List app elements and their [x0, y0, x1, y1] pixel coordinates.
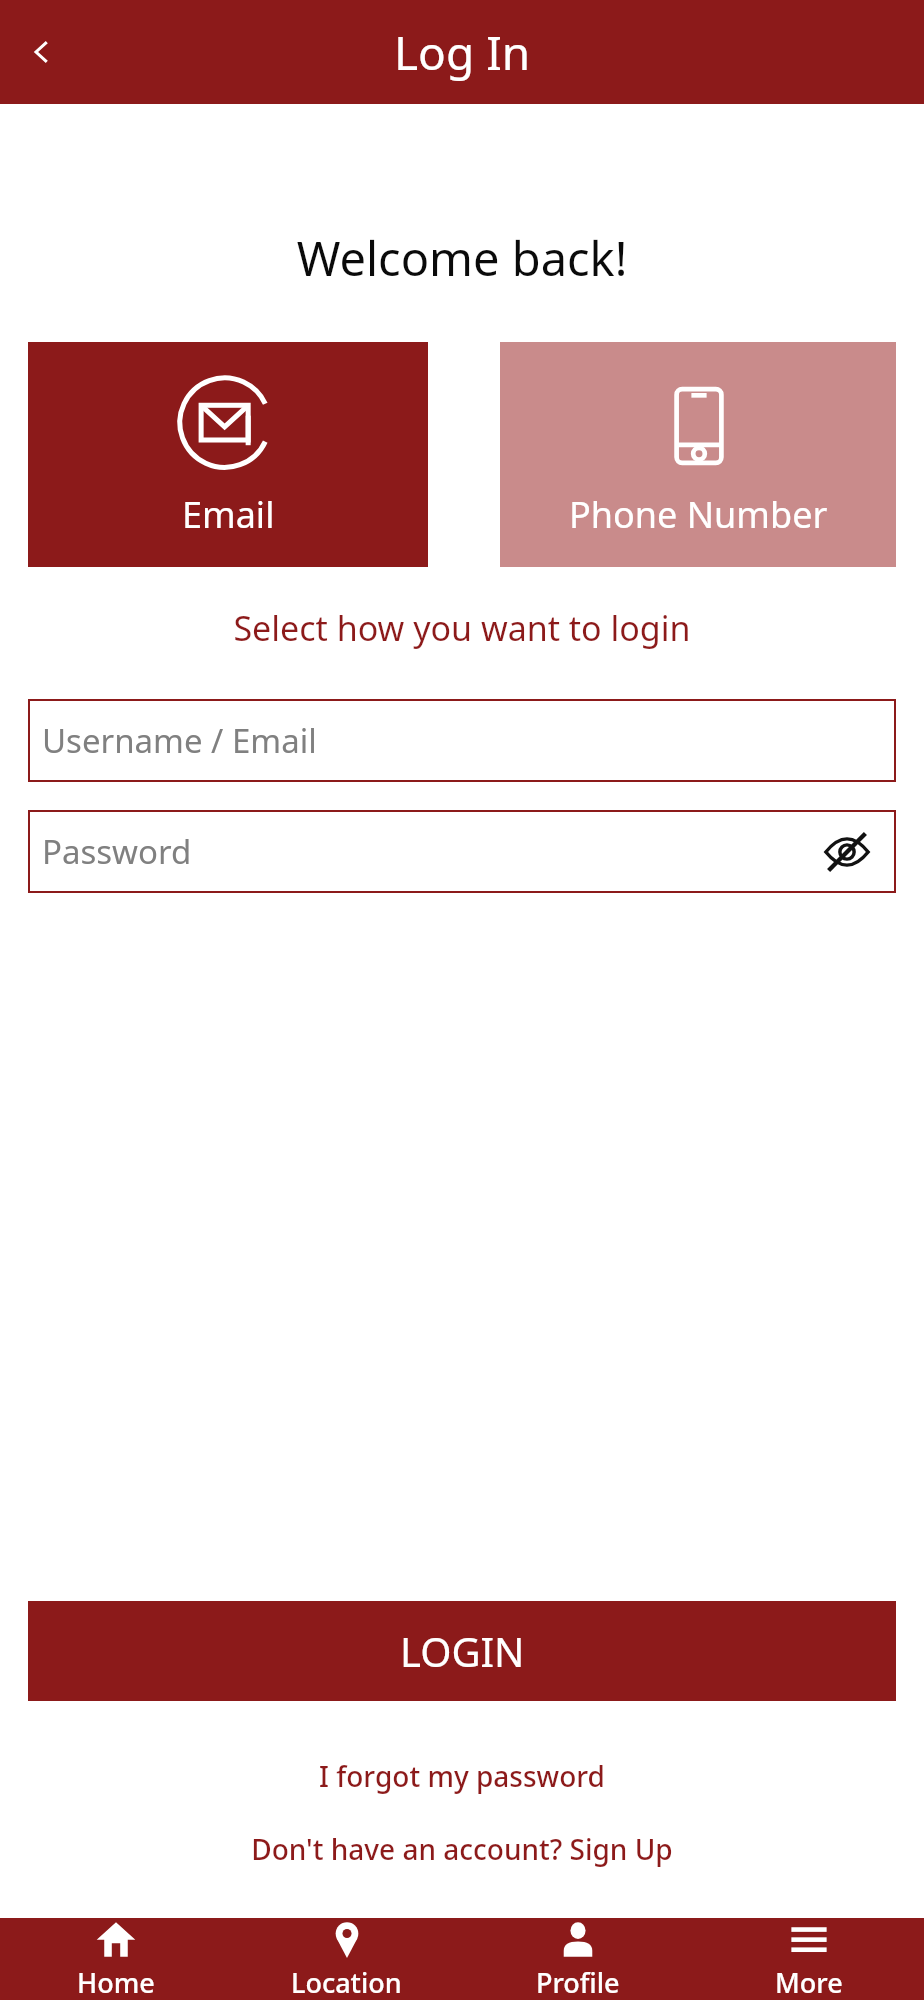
button[interactable]: Don't have an account? Sign Up — [0, 1830, 924, 1868]
button[interactable]: Password — [28, 810, 896, 893]
button[interactable]: Back — [0, 10, 84, 94]
button[interactable]: Email — [28, 342, 428, 567]
staticText: Password — [42, 829, 192, 874]
staticText: Phone Number — [569, 490, 828, 539]
staticText: Welcome back! — [0, 226, 924, 290]
staticText: More — [775, 1964, 843, 2000]
staticText: LOGIN — [400, 1624, 525, 1678]
button[interactable]: Phone Number — [500, 342, 896, 567]
button[interactable]: Location — [231, 1918, 462, 2000]
button[interactable]: More — [693, 1918, 924, 2000]
staticText: Select how you want to login — [0, 605, 924, 651]
staticText: Location — [291, 1964, 402, 2000]
staticText: Home — [77, 1964, 155, 2000]
button[interactable]: I forgot my password — [0, 1757, 924, 1795]
button[interactable]: Username / Email — [28, 699, 896, 782]
staticText: I forgot my password — [319, 1757, 605, 1795]
button[interactable]: Profile — [462, 1918, 693, 2000]
staticText: Profile — [536, 1964, 620, 2000]
button[interactable]: LOGIN — [28, 1601, 896, 1701]
staticText: Log In — [394, 21, 531, 84]
button[interactable]: Home — [0, 1918, 231, 2000]
staticText: Email — [182, 490, 275, 539]
button[interactable]: Show password — [820, 825, 874, 879]
staticText: Username / Email — [42, 718, 317, 763]
staticText: Don't have an account? Sign Up — [251, 1830, 673, 1868]
